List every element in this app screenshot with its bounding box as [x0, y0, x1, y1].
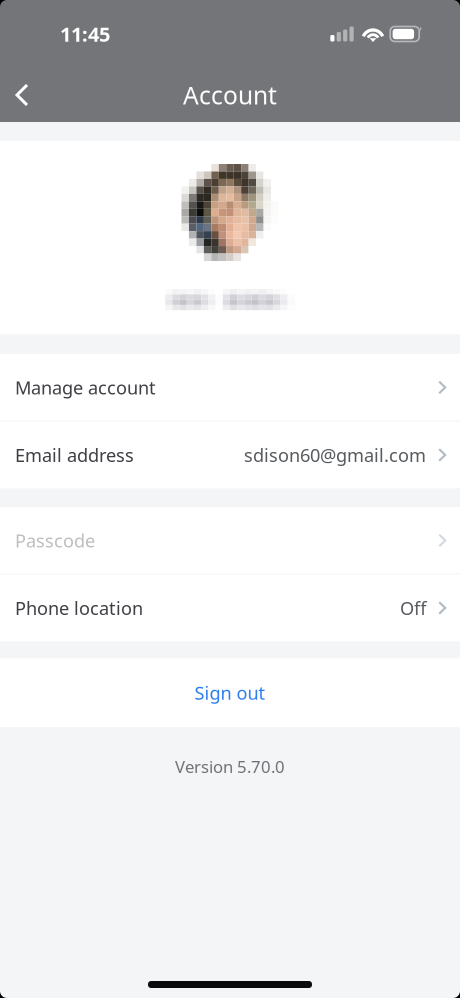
- staticText: Manage account: [15, 375, 156, 400]
- button[interactable]: Email address: [0, 422, 460, 488]
- staticText: Passcode: [15, 528, 95, 553]
- staticText: Sign out: [194, 680, 265, 705]
- staticText: Account: [183, 78, 277, 112]
- button[interactable]: Manage account: [0, 354, 460, 421]
- staticText: sdison60@gmail.com: [244, 443, 426, 467]
- staticText: Phone location: [15, 596, 143, 620]
- button[interactable]: Phone location: [0, 575, 460, 641]
- staticText: Version 5.70.0: [175, 755, 285, 778]
- button[interactable]: Passcode: [0, 507, 460, 574]
- button[interactable]: Back: [0, 73, 44, 117]
- staticText: 11:45: [60, 20, 110, 48]
- button[interactable]: Sign out: [0, 658, 460, 727]
- staticText: Off: [400, 596, 426, 620]
- staticText: Email address: [15, 443, 134, 467]
